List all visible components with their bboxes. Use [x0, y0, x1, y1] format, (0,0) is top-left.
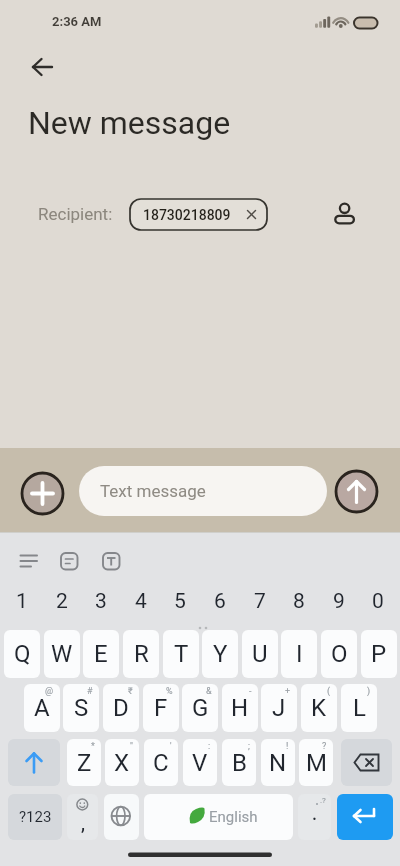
- staticText: G: [192, 694, 209, 722]
- button[interactable]: M: [299, 739, 333, 786]
- button[interactable]: 8: [281, 583, 317, 619]
- staticText: .?: [320, 796, 326, 805]
- staticText: U: [252, 640, 268, 668]
- staticText: C: [153, 749, 169, 777]
- button[interactable]: 1: [4, 583, 40, 619]
- button[interactable]: G: [182, 684, 218, 732]
- button[interactable]: D: [103, 684, 139, 732]
- button[interactable]: Q: [4, 630, 40, 678]
- staticText: 5: [174, 589, 186, 614]
- button[interactable]: 3: [83, 583, 119, 619]
- button[interactable]: Z: [67, 739, 101, 786]
- button[interactable]: [97, 548, 127, 576]
- button[interactable]: O: [321, 630, 357, 678]
- button[interactable]: K: [301, 684, 337, 732]
- staticText: X: [114, 749, 130, 777]
- staticText: 8: [293, 589, 305, 614]
- staticText: 6: [214, 589, 226, 614]
- button[interactable]: A: [24, 684, 60, 732]
- button[interactable]: 5: [162, 583, 198, 619]
- button[interactable]: ,: [67, 794, 98, 840]
- staticText: !: [286, 741, 289, 752]
- staticText: T: [174, 640, 189, 668]
- staticText: (: [327, 686, 331, 697]
- staticText: ': [170, 741, 172, 752]
- staticText: E: [94, 640, 108, 668]
- button[interactable]: [22, 473, 63, 514]
- staticText: J: [272, 694, 286, 722]
- staticText: L: [353, 694, 366, 722]
- staticText: New message: [28, 104, 231, 142]
- staticText: ": [130, 741, 133, 752]
- button[interactable]: 4: [123, 583, 159, 619]
- staticText: D: [113, 694, 129, 722]
- button[interactable]: [14, 548, 44, 576]
- staticText: ,: [81, 813, 85, 834]
- staticText: 1: [16, 589, 28, 614]
- button[interactable]: [336, 471, 377, 512]
- staticText: *: [91, 741, 95, 752]
- button[interactable]: [337, 794, 393, 840]
- button[interactable]: F: [143, 684, 179, 732]
- staticText: V: [192, 749, 208, 777]
- staticText: R: [134, 640, 149, 668]
- staticText: @: [45, 686, 54, 697]
- staticText: O: [331, 640, 348, 668]
- button[interactable]: 2: [44, 583, 80, 619]
- button[interactable]: 0: [360, 583, 396, 619]
- button[interactable]: N: [261, 739, 295, 786]
- staticText: Z: [77, 749, 92, 777]
- button[interactable]: U: [242, 630, 278, 678]
- staticText: English: [209, 808, 258, 826]
- button[interactable]: Y: [202, 630, 238, 678]
- button[interactable]: 18730218809: [130, 199, 267, 230]
- button[interactable]: [24, 51, 60, 83]
- staticText: Recipient:: [38, 204, 113, 224]
- button[interactable]: Text message: [79, 466, 327, 516]
- button[interactable]: 9: [321, 583, 357, 619]
- staticText: K: [311, 694, 327, 722]
- button[interactable]: R: [123, 630, 159, 678]
- staticText: A: [34, 694, 50, 722]
- button[interactable]: [104, 794, 139, 840]
- staticText: B: [232, 749, 247, 777]
- button[interactable]: W: [44, 630, 80, 678]
- button[interactable]: X: [105, 739, 139, 786]
- staticText: 0: [372, 589, 384, 614]
- button[interactable]: H: [222, 684, 258, 732]
- staticText: +: [285, 686, 291, 697]
- staticText: W: [51, 640, 73, 668]
- button[interactable]: I: [281, 630, 317, 678]
- staticText: Text message: [100, 481, 206, 501]
- button[interactable]: C: [144, 739, 178, 786]
- button[interactable]: [341, 739, 392, 786]
- staticText: I: [296, 640, 303, 668]
- button[interactable]: .: [298, 794, 331, 840]
- staticText: ): [367, 686, 371, 697]
- button[interactable]: L: [341, 684, 377, 732]
- staticText: F: [154, 694, 168, 722]
- button[interactable]: J: [261, 684, 297, 732]
- button[interactable]: S: [63, 684, 99, 732]
- staticText: :: [208, 741, 211, 752]
- button[interactable]: [8, 739, 60, 786]
- button[interactable]: [55, 548, 85, 576]
- button[interactable]: V: [183, 739, 217, 786]
- button[interactable]: P: [361, 630, 397, 678]
- staticText: P: [371, 640, 387, 668]
- button[interactable]: 6: [202, 583, 238, 619]
- button[interactable]: [330, 195, 360, 233]
- staticText: 18730218809: [143, 207, 231, 223]
- staticText: M: [306, 749, 327, 777]
- button[interactable]: 7: [242, 583, 278, 619]
- staticText: Y: [213, 640, 228, 668]
- staticText: 7: [254, 589, 266, 614]
- button[interactable]: T: [163, 630, 199, 678]
- button[interactable]: E: [83, 630, 119, 678]
- staticText: 4: [135, 589, 147, 614]
- button[interactable]: English: [144, 794, 293, 840]
- button[interactable]: B: [222, 739, 256, 786]
- staticText: N: [269, 749, 287, 777]
- button[interactable]: ?123: [8, 794, 62, 840]
- staticText: ?123: [19, 808, 52, 826]
